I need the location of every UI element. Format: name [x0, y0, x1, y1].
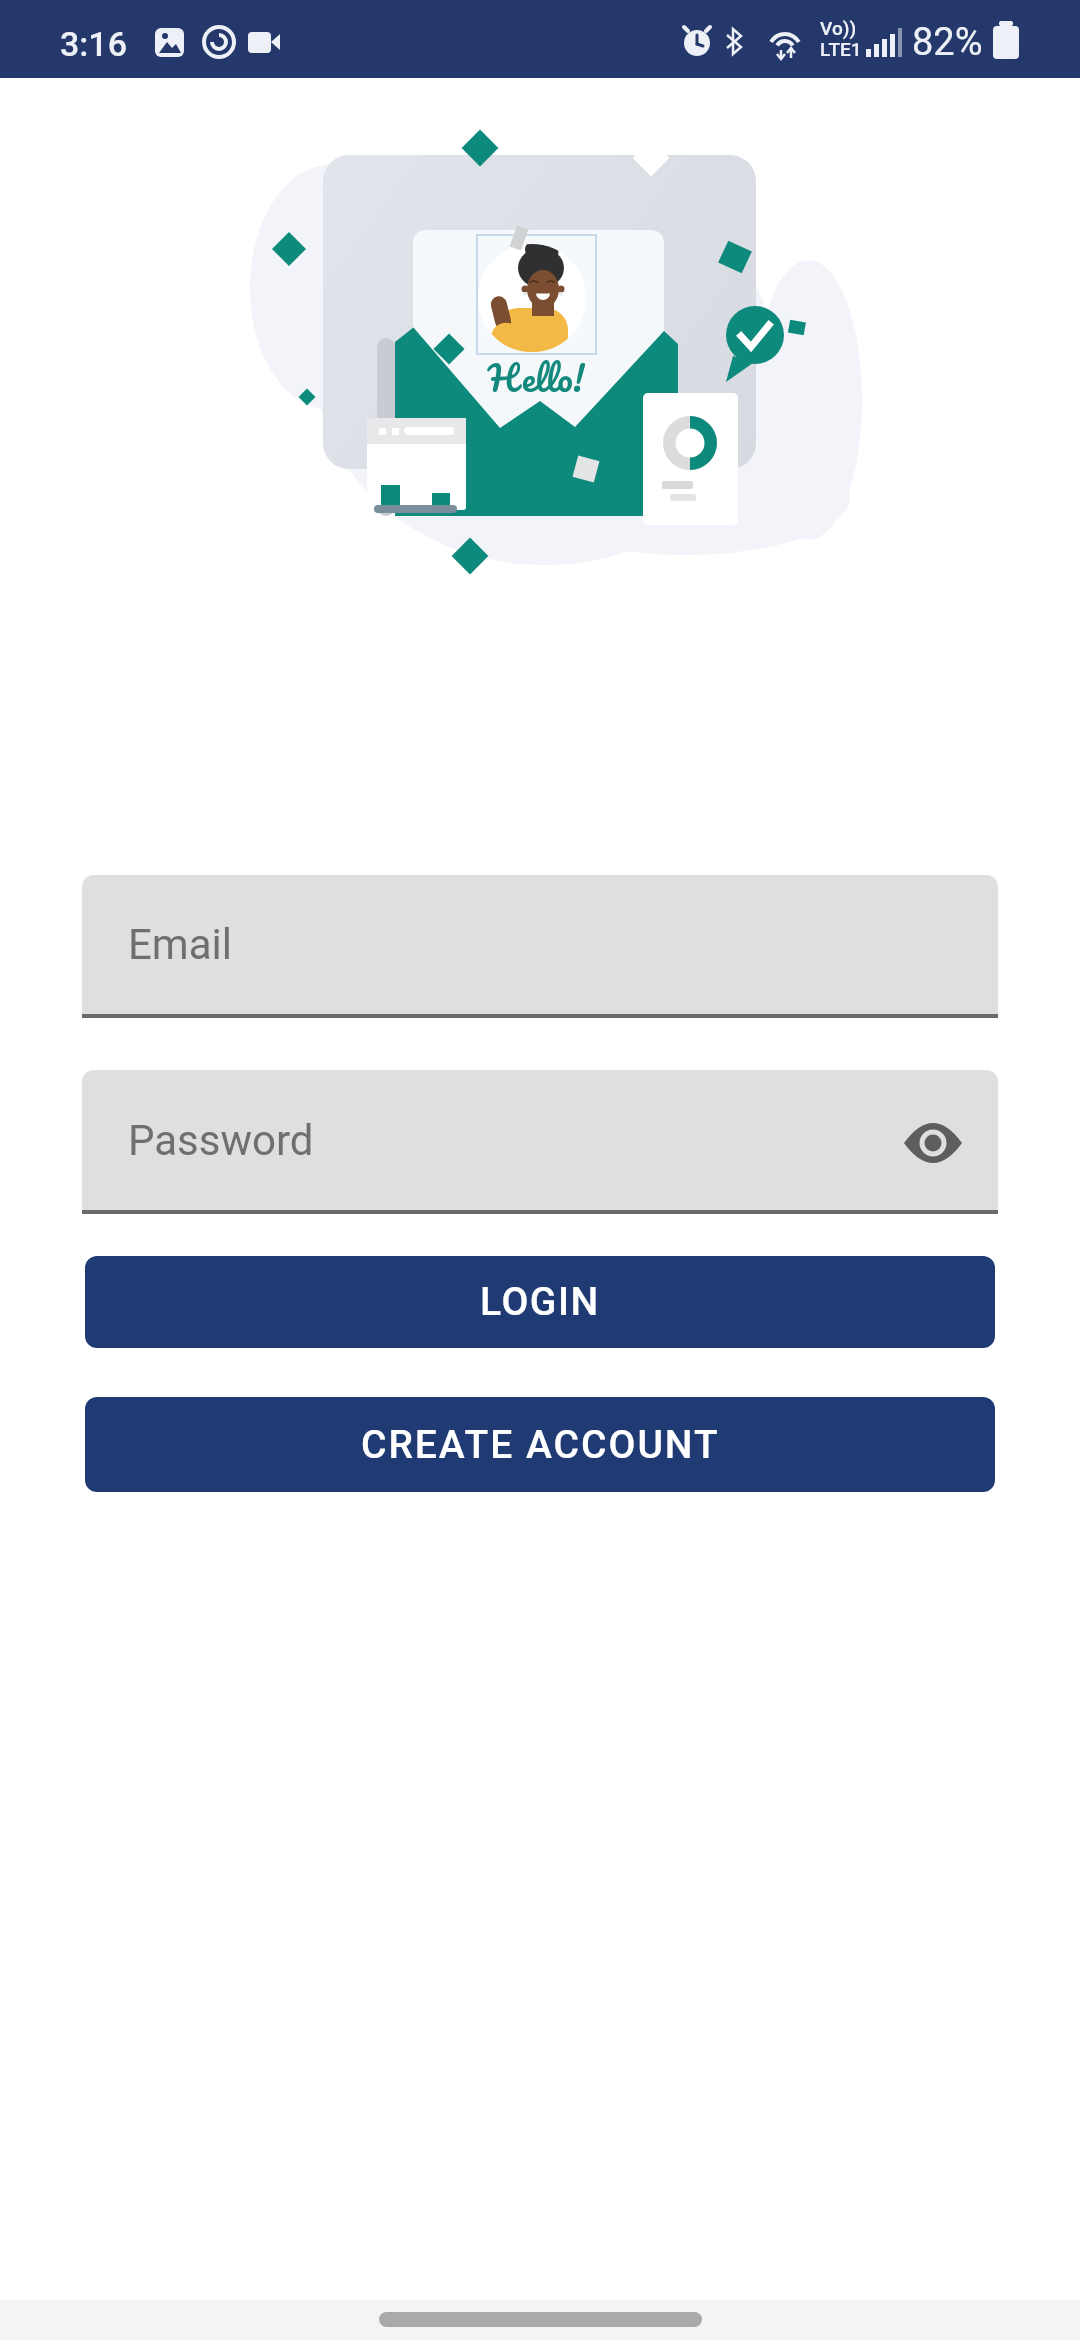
staticText: 3:16 — [60, 24, 127, 64]
staticText: Vo)) LTE1 — [820, 17, 862, 61]
staticText: Hello! — [386, 348, 686, 412]
staticText: CREATE ACCOUNT — [361, 1422, 720, 1468]
button[interactable] — [900, 1118, 966, 1168]
staticText: Email — [128, 920, 232, 969]
staticText: 82% — [912, 20, 983, 65]
button[interactable]: CREATE ACCOUNT — [85, 1397, 995, 1492]
button[interactable]: Password — [82, 1070, 998, 1210]
staticText: Password — [128, 1116, 314, 1165]
button[interactable]: LOGIN — [85, 1256, 995, 1348]
button[interactable]: Email — [82, 875, 998, 1014]
staticText: LOGIN — [480, 1279, 600, 1325]
